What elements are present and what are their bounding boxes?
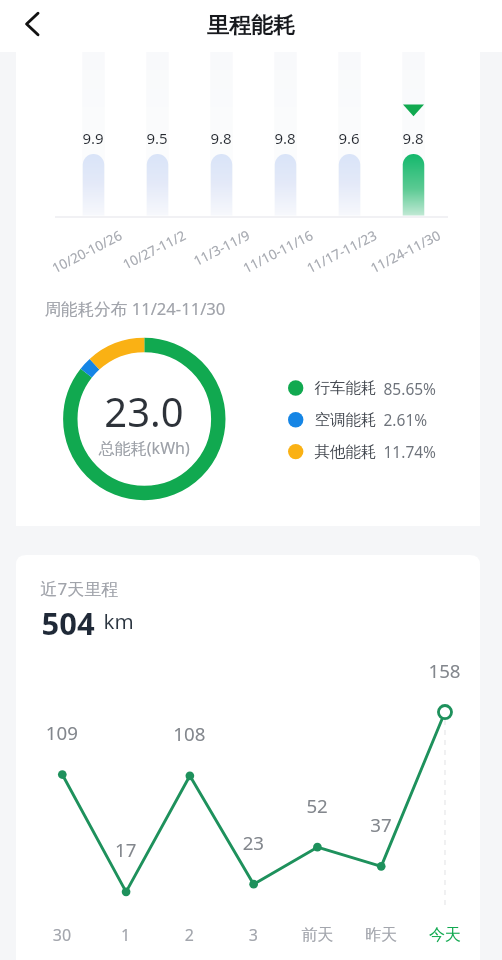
staticText: 里程能耗 bbox=[207, 12, 295, 40]
button[interactable]: Back bbox=[0, 0, 52, 52]
